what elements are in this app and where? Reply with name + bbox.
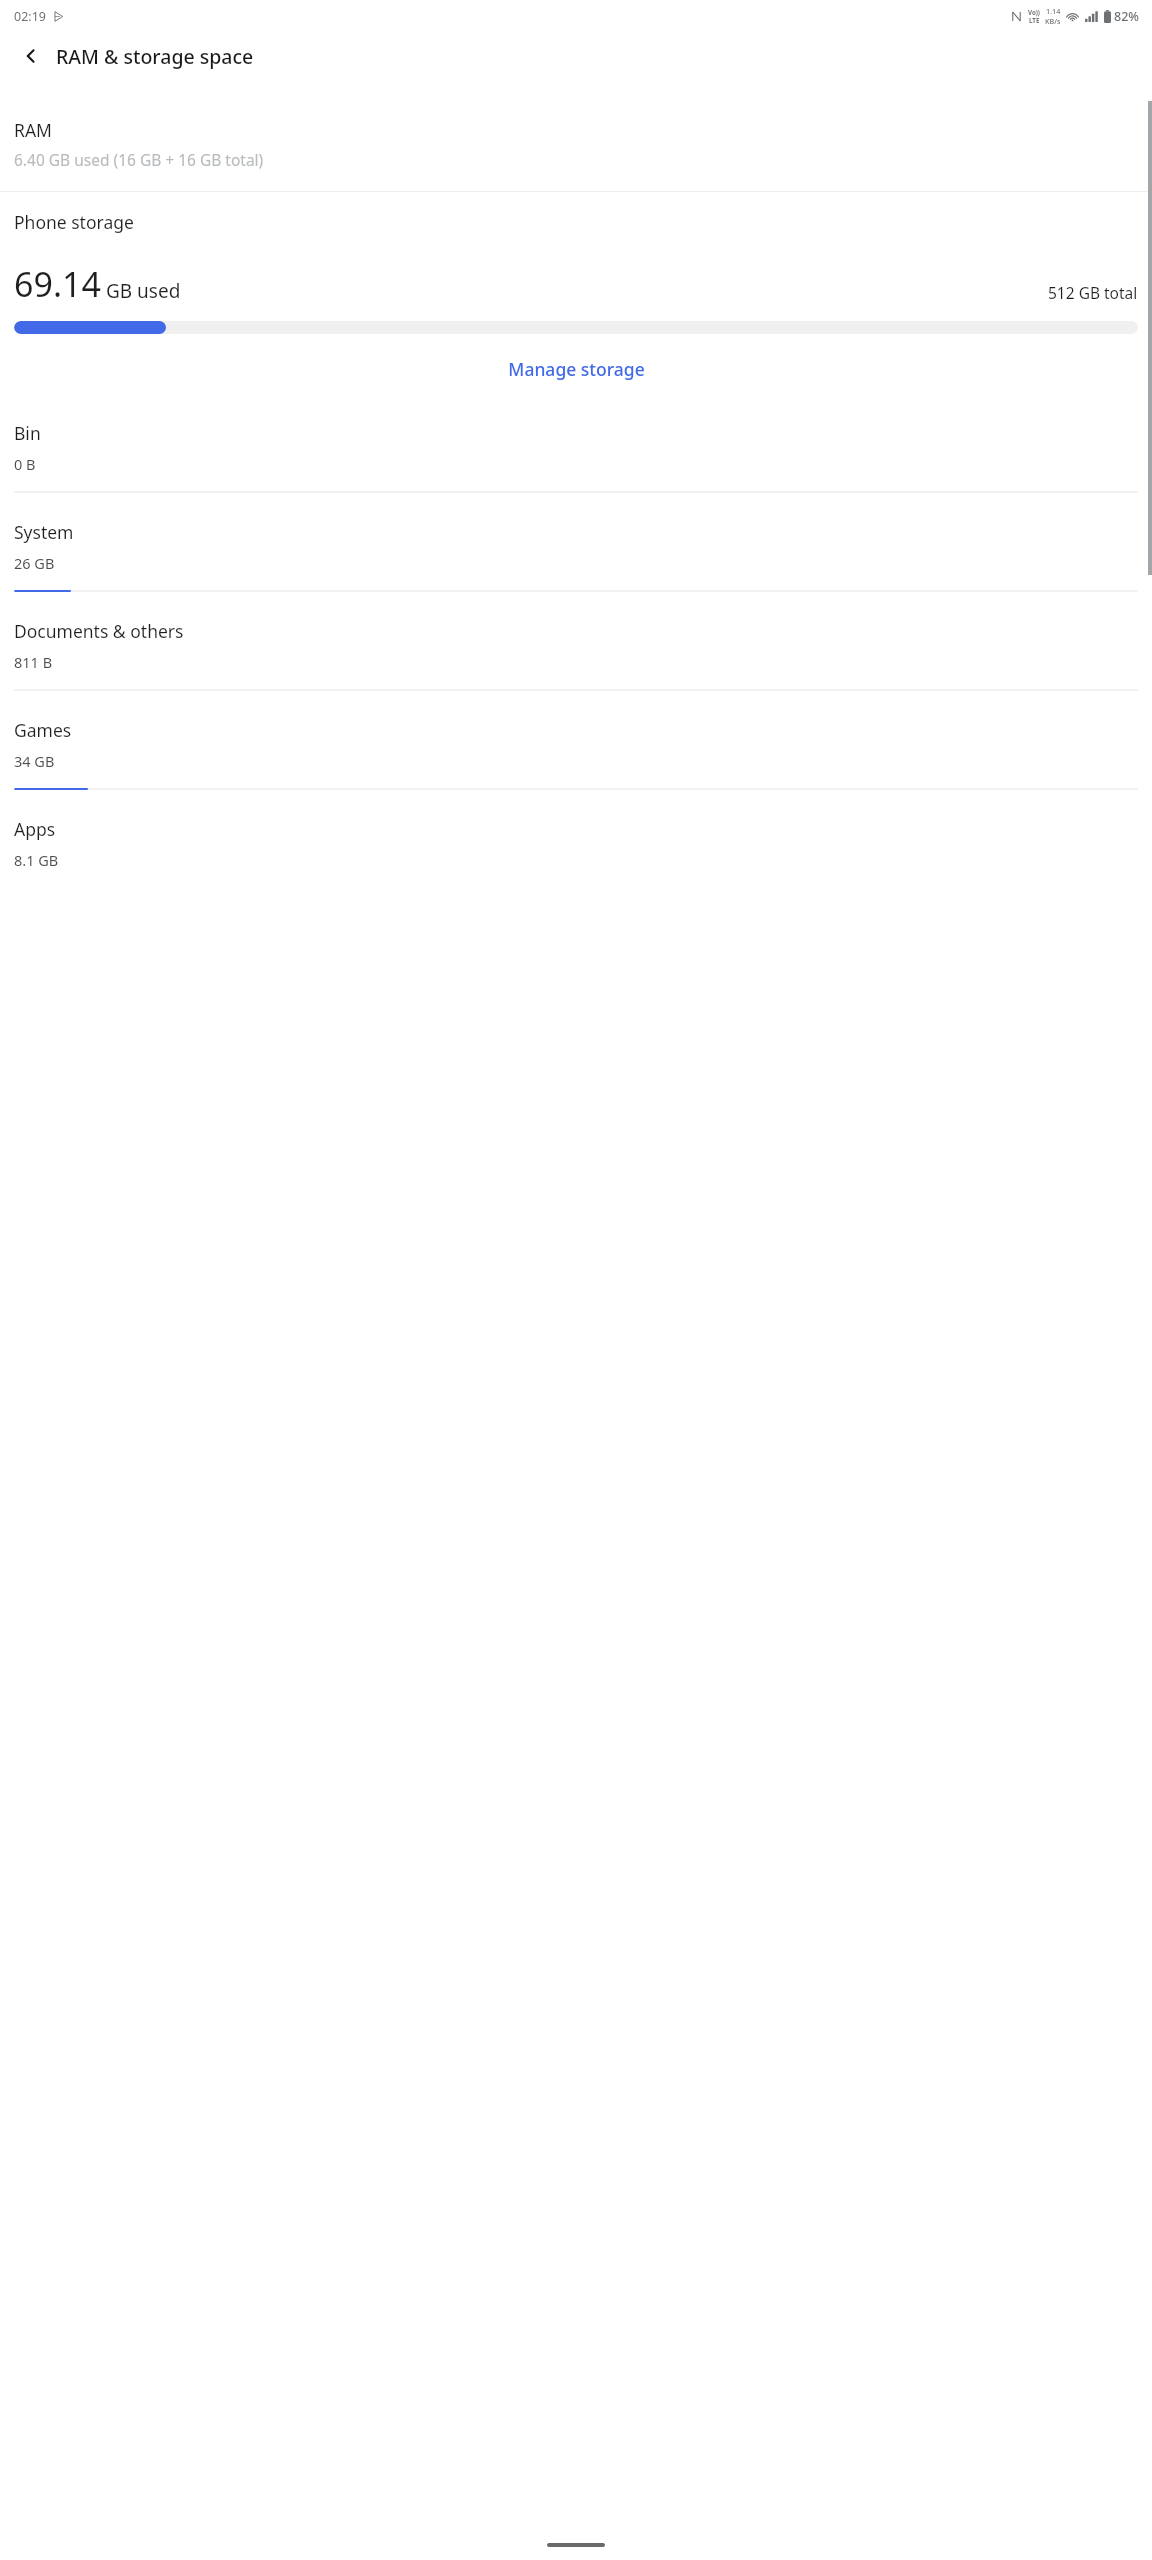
staticText: LTE — [1029, 16, 1040, 24]
staticText: GB used — [106, 278, 181, 304]
button[interactable]: System — [0, 511, 1152, 610]
button[interactable]: Documents & others — [0, 610, 1152, 709]
staticText: System — [14, 520, 74, 544]
staticText: KB/s — [1045, 16, 1061, 26]
staticText: 512 GB total — [1048, 282, 1138, 303]
button[interactable]: Back — [14, 39, 48, 73]
staticText: Phone storage — [14, 210, 134, 234]
staticText: 26 GB — [14, 553, 55, 573]
staticText: 82% — [1114, 8, 1139, 25]
button[interactable]: Bin — [0, 412, 1152, 511]
staticText: 34 GB — [14, 751, 55, 771]
button[interactable]: Apps — [0, 808, 1152, 887]
staticText: Bin — [14, 421, 41, 445]
staticText: 0 B — [14, 454, 36, 474]
button[interactable]: Manage storage — [14, 357, 1138, 381]
staticText: Apps — [14, 817, 56, 841]
staticText: 02:19 — [14, 8, 46, 25]
staticText: 811 B — [14, 652, 53, 672]
staticText: 1.14 — [1046, 6, 1061, 16]
staticText: Manage storage — [508, 357, 645, 381]
button[interactable]: RAM — [0, 102, 1152, 190]
staticText: 8.1 GB — [14, 850, 59, 870]
staticText: Documents & others — [14, 619, 184, 643]
button[interactable]: Games — [0, 709, 1152, 808]
staticText: RAM — [14, 118, 52, 142]
staticText: Games — [14, 718, 72, 742]
staticText: RAM & storage space — [56, 43, 254, 70]
staticText: 6.40 GB used (16 GB + 16 GB total) — [14, 149, 264, 170]
staticText: Vo)) — [1028, 8, 1040, 16]
staticText: 69.14 — [14, 261, 101, 307]
